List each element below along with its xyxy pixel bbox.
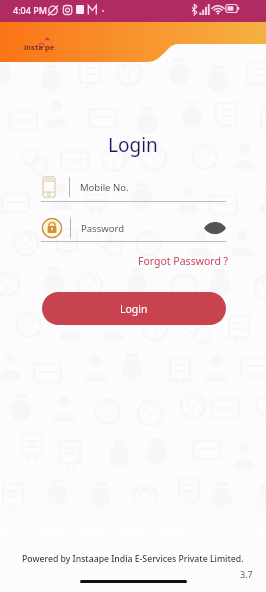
staticText: Forgot Password ? [138, 254, 229, 268]
staticText: 3.7 [240, 568, 253, 580]
button[interactable]: Password [41, 217, 226, 239]
staticText: 4:04 PM [13, 4, 47, 16]
staticText: Password [81, 222, 124, 235]
button[interactable]: Show password [203, 217, 227, 239]
staticText: Login [108, 132, 158, 158]
button[interactable]: Login [42, 292, 226, 325]
staticText: Mobile No. [80, 181, 129, 194]
staticText: Powered by Instaape India E-Services Pri… [22, 553, 244, 565]
staticText: insta [24, 42, 43, 52]
button[interactable]: Forgot Password ? [136, 252, 231, 270]
staticText: Login [120, 302, 148, 316]
staticText: pe [45, 42, 55, 52]
button[interactable]: Mobile No. [41, 176, 226, 198]
